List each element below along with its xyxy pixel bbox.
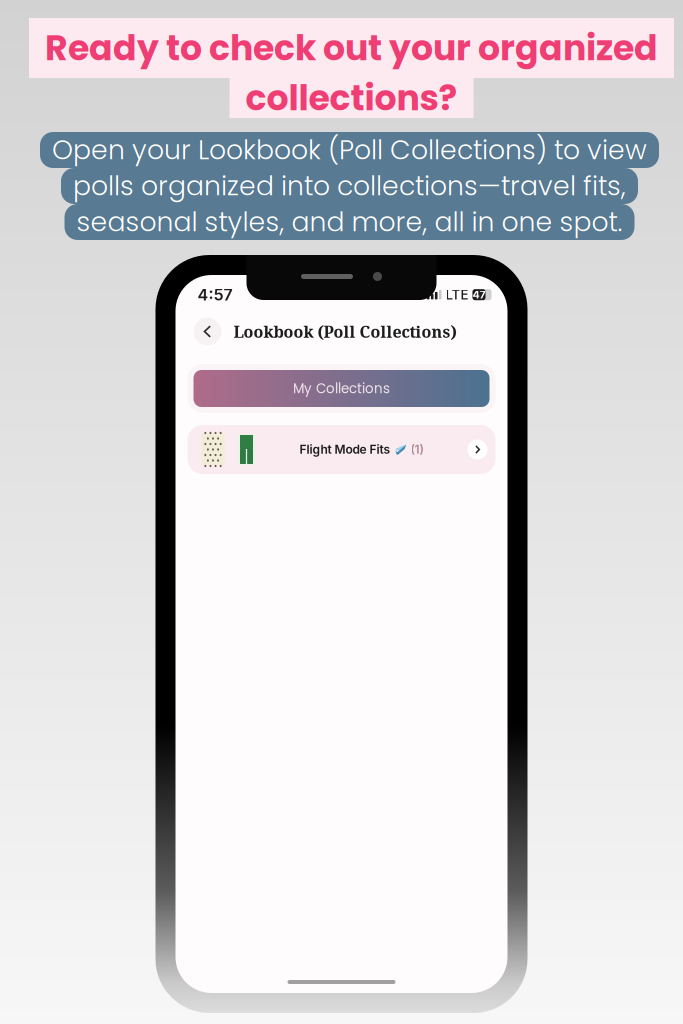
staticText: seasonal styles, and more, all in one sp…	[76, 203, 622, 241]
staticText: Flight Mode Fits	[299, 442, 390, 457]
staticText: 4:57	[197, 285, 232, 304]
button[interactable]: My Collections	[187, 364, 495, 413]
button[interactable]: Back	[193, 317, 221, 345]
staticText: My Collections	[293, 379, 390, 398]
staticText: (1)	[410, 442, 423, 457]
staticText: 47	[472, 288, 485, 301]
staticText: polls organized into collections—travel …	[73, 167, 626, 205]
staticText: LTE	[445, 287, 468, 303]
button[interactable]: Flight Mode Fits	[187, 425, 495, 474]
staticText: Open your Lookbook (Poll Collections) to…	[52, 131, 647, 169]
staticText: Lookbook (Poll Collections)	[233, 321, 456, 342]
staticText: Ready to check out your organized	[45, 24, 658, 72]
staticText: collections?	[245, 74, 457, 122]
